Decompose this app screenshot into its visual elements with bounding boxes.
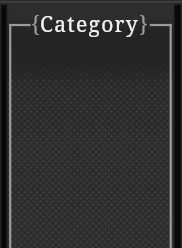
staticText: } [139,10,148,39]
staticText: { [31,10,40,39]
staticText: Category [40,10,139,39]
